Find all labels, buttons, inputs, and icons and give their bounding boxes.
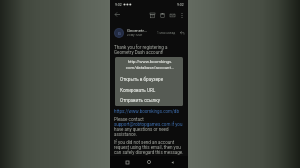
staticText: http://www.boomkings. com/database/accou…: [119, 59, 181, 70]
button[interactable]: Recent apps: [121, 156, 133, 168]
button[interactable]: More options: [177, 10, 187, 20]
button[interactable]: Archive: [147, 10, 157, 20]
staticText: Geometr...: [127, 28, 148, 33]
button[interactable]: Delete: [157, 10, 167, 20]
staticText: Копировать URL: [120, 88, 156, 93]
button[interactable]: Back: [166, 156, 178, 168]
button[interactable]: Копировать URL: [115, 85, 183, 96]
button[interactable]: Mark unread: [167, 10, 177, 20]
staticText: 1 мая назад: [157, 31, 176, 35]
button[interactable]: Открыть в браузере: [115, 74, 183, 85]
staticText: Отправить ссылку: [120, 98, 160, 103]
button[interactable]: Отправить ссылку: [115, 95, 183, 106]
staticText: Please contact: [114, 117, 186, 122]
staticText: 9:02: [115, 3, 122, 7]
button[interactable]: Back: [112, 9, 123, 20]
staticText: Thank you for registering a Geometry Das…: [114, 45, 185, 55]
staticText: кому: мне: [127, 33, 143, 37]
staticText: assistance.: [114, 132, 186, 137]
staticText: have any questions or need: [114, 127, 186, 132]
staticText: support@robtopgames.com if you: [114, 122, 186, 127]
button[interactable]: Home: [143, 156, 155, 168]
staticText: If you did not send an account request u…: [114, 140, 186, 155]
staticText: G: [118, 31, 121, 36]
staticText: Открыть в браузере: [120, 77, 164, 82]
button[interactable]: Reply: [178, 29, 186, 37]
staticText: 9:02: [177, 3, 184, 7]
staticText: https://www.boomkings.com/db: [114, 109, 186, 114]
